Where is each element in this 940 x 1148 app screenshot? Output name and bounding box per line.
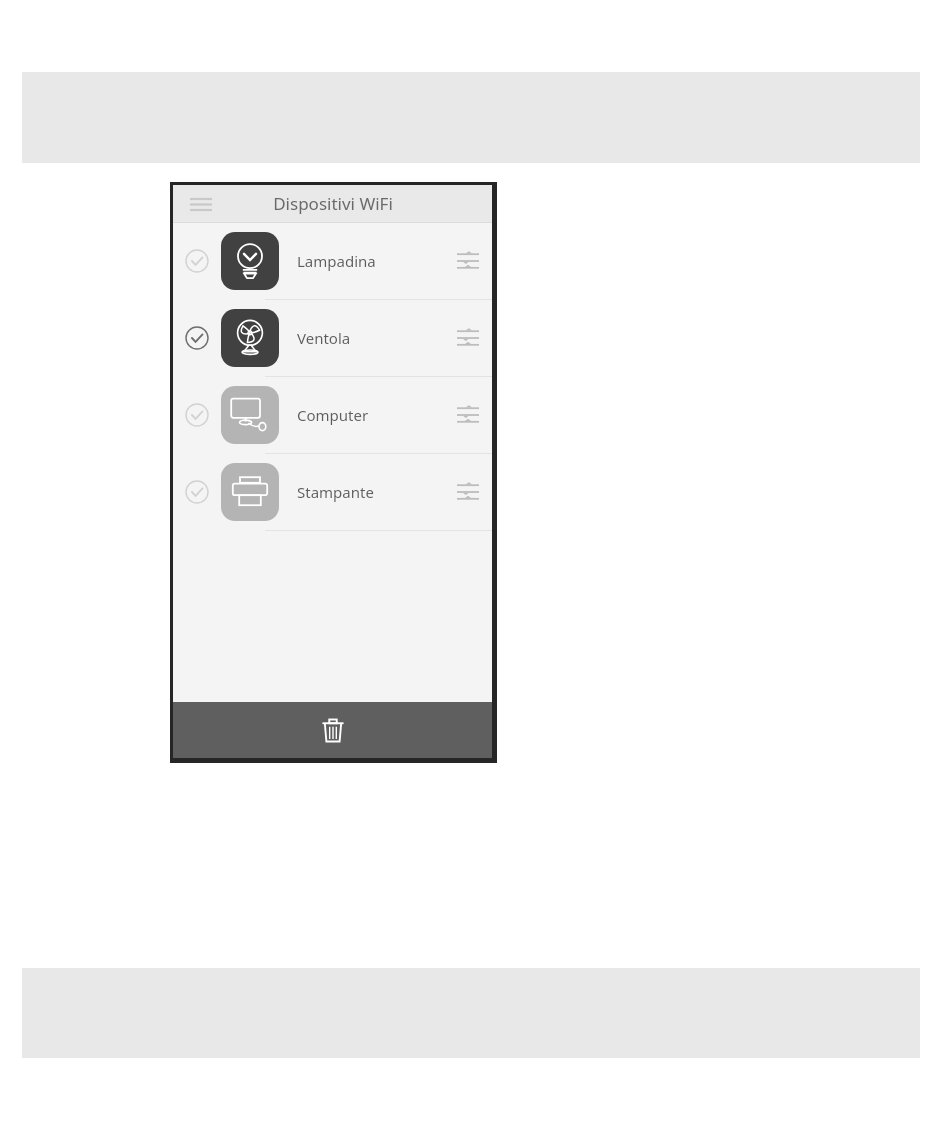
button[interactable]: Stampante not selected — [173, 454, 492, 530]
button[interactable]: Computer not selected — [173, 377, 221, 453]
button[interactable]: Settings for Stampante — [444, 467, 492, 517]
button[interactable]: Stampante not selected — [173, 454, 221, 530]
staticText: Stampante — [297, 482, 444, 502]
button[interactable]: Lampadina not selected — [173, 223, 492, 299]
button[interactable]: Computer not selected — [173, 377, 492, 453]
button[interactable]: Menu — [184, 187, 218, 221]
staticText: Lampadina — [297, 251, 444, 271]
button[interactable]: Settings for Ventola — [444, 313, 492, 363]
staticText: Dispositivi WiFi — [273, 192, 393, 215]
staticText: Ventola — [297, 328, 444, 348]
button[interactable]: Settings for Computer — [444, 390, 492, 440]
button[interactable]: Ventola selected — [173, 300, 492, 376]
button[interactable]: Settings for Lampadina — [444, 236, 492, 286]
button[interactable]: Delete selected devices — [173, 702, 492, 758]
button[interactable]: Lampadina not selected — [173, 223, 221, 299]
button[interactable]: Ventola selected — [173, 300, 221, 376]
staticText: Computer — [297, 405, 444, 425]
